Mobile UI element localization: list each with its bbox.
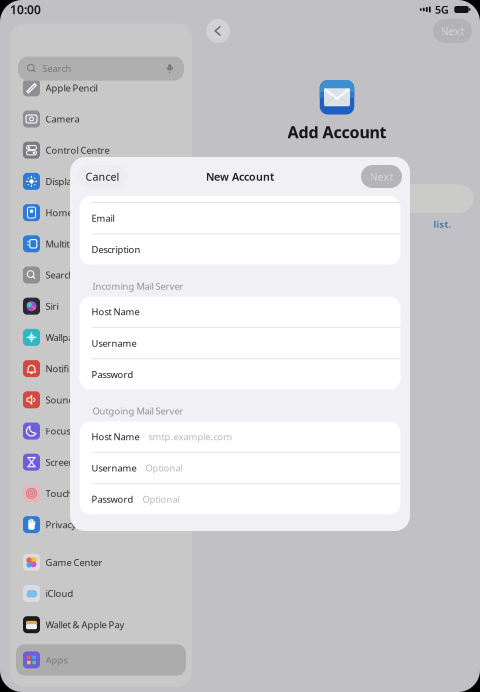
- button[interactable]: Apps: [16, 644, 186, 675]
- staticText: Optional: [145, 462, 182, 474]
- staticText: Camera: [45, 113, 79, 125]
- staticText: Siri: [45, 300, 58, 312]
- staticText: smtp.example.com: [148, 430, 232, 443]
- staticText: Multitasking: [45, 238, 97, 250]
- staticText: Apple Pencil: [45, 82, 97, 94]
- staticText: Description: [91, 243, 140, 256]
- button[interactable]: Display: [16, 166, 186, 197]
- button[interactable]: Privacy: [16, 509, 186, 540]
- staticText: Display: [45, 175, 76, 188]
- button[interactable]: iCloud: [16, 578, 186, 609]
- staticText: Password: [91, 368, 133, 381]
- staticText: Host Name: [91, 306, 139, 318]
- staticText: Game Center: [45, 556, 102, 568]
- button[interactable]: Cancel: [78, 165, 127, 188]
- button[interactable]: Touch ID: [16, 478, 186, 509]
- staticText: Optional: [142, 493, 179, 505]
- staticText: Wallet & Apple Pay: [45, 618, 124, 631]
- staticText: Search: [42, 62, 71, 75]
- staticText: 10:00: [10, 1, 41, 17]
- button[interactable]: Search: [16, 259, 186, 291]
- staticText: Touch ID: [45, 487, 84, 500]
- staticText: Password: [91, 493, 133, 505]
- button[interactable]: Back: [206, 19, 230, 43]
- staticText: Screen Time: [45, 456, 97, 468]
- staticText: New Account: [206, 169, 274, 184]
- button[interactable]: Home: [16, 197, 186, 228]
- button[interactable]: Control Centre: [16, 135, 186, 166]
- staticText: iCloud: [45, 587, 73, 600]
- button[interactable]: Multitasking: [16, 228, 186, 259]
- staticText: Privacy: [45, 518, 76, 531]
- staticText: Username: [91, 462, 136, 474]
- staticText: Username: [91, 337, 136, 349]
- button[interactable]: Screen Time: [16, 447, 186, 478]
- staticText: Cancel: [85, 169, 119, 184]
- button[interactable]: Game Center: [16, 547, 186, 578]
- staticText: Wallpaper: [45, 331, 88, 344]
- staticText: Search: [45, 269, 74, 281]
- staticText: Email: [91, 212, 114, 224]
- staticText: list.: [433, 218, 451, 230]
- button[interactable]: Sound: [16, 384, 186, 415]
- staticText: Home: [45, 206, 72, 219]
- staticText: Next: [440, 24, 464, 38]
- staticText: Control Centre: [45, 144, 109, 156]
- staticText: Incoming Mail Server: [92, 280, 183, 292]
- staticText: Host Name: [91, 430, 139, 443]
- button[interactable]: Next: [433, 19, 472, 43]
- staticText: Next: [369, 169, 393, 184]
- button[interactable]: Siri: [16, 291, 186, 322]
- button[interactable]: Wallet & Apple Pay: [16, 609, 186, 640]
- staticText: Apps: [45, 654, 67, 666]
- button[interactable]: Wallpaper: [16, 322, 186, 353]
- button[interactable]: Next: [361, 165, 402, 188]
- staticText: 5G: [435, 2, 449, 17]
- button[interactable]: Notifications: [16, 353, 186, 384]
- button[interactable]: Camera: [16, 103, 186, 135]
- staticText: Notifications: [45, 362, 99, 375]
- staticText: Sound: [45, 394, 74, 406]
- button[interactable]: Focus: [16, 415, 186, 447]
- button[interactable]: Apple Pencil: [16, 72, 186, 103]
- staticText: Outgoing Mail Server: [92, 405, 183, 417]
- staticText: Focus: [45, 425, 70, 437]
- staticText: Add Account: [287, 121, 386, 143]
